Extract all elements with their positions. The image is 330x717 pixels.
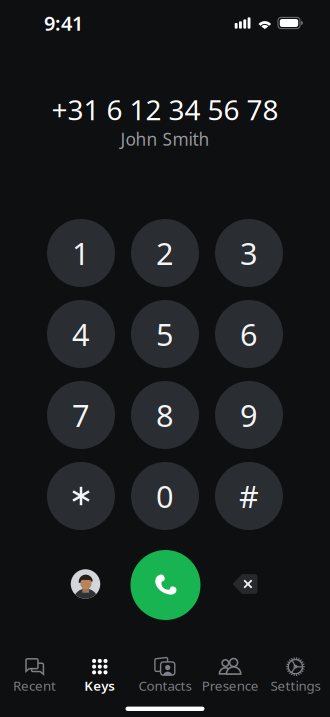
button[interactable]: Recent	[2, 657, 67, 693]
button[interactable]: Presence	[198, 657, 263, 693]
button[interactable]: #	[215, 462, 283, 530]
button[interactable]: 7	[47, 381, 115, 449]
button[interactable]: Contacts	[132, 657, 198, 693]
button[interactable]: Settings	[263, 657, 328, 693]
button[interactable]: 5	[131, 300, 199, 368]
button[interactable]: 3	[215, 219, 283, 287]
button[interactable]: Keys	[67, 657, 132, 693]
staticText: 8	[156, 395, 174, 435]
staticText: 2	[156, 233, 174, 273]
button[interactable]	[47, 462, 115, 530]
staticText: 9:41	[44, 10, 83, 36]
staticText: 3	[240, 233, 258, 273]
staticText: Settings	[270, 677, 320, 694]
button[interactable]: Recent caller John Smith	[54, 553, 116, 615]
staticText: 6	[240, 314, 258, 354]
button[interactable]: 9	[215, 381, 283, 449]
staticText: 4	[72, 314, 90, 354]
staticText: 0	[156, 476, 174, 516]
button[interactable]: Call	[130, 550, 200, 620]
button[interactable]: 4	[47, 300, 115, 368]
button[interactable]: Delete	[214, 553, 276, 615]
staticText: Contacts	[138, 677, 191, 694]
button[interactable]: 8	[131, 381, 199, 449]
button[interactable]: 2	[131, 219, 199, 287]
staticText: +31 6 12 34 56 78	[51, 91, 278, 128]
staticText: 9	[240, 395, 258, 435]
staticText: 1	[72, 233, 90, 273]
staticText: 7	[72, 395, 90, 435]
staticText: Presence	[202, 677, 259, 694]
button[interactable]: 6	[215, 300, 283, 368]
staticText: #	[239, 476, 259, 516]
staticText: 5	[156, 314, 174, 354]
staticText: John Smith	[120, 127, 209, 150]
staticText: Recent	[13, 677, 56, 694]
button[interactable]: 0	[131, 462, 199, 530]
button[interactable]: 1	[47, 219, 115, 287]
staticText: Keys	[84, 677, 115, 694]
